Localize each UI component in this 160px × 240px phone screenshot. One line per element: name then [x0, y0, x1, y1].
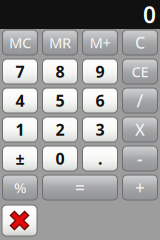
staticText: 0 [55, 148, 64, 169]
button[interactable]: 1 [2, 117, 37, 142]
button[interactable]: MR [42, 30, 77, 55]
button[interactable]: % [2, 175, 37, 200]
staticText: C [135, 32, 145, 53]
staticText: 1 [15, 119, 24, 140]
staticText: 6 [95, 90, 104, 111]
staticText: 7 [15, 61, 24, 82]
button[interactable]: + [122, 175, 157, 200]
button[interactable]: 8 [42, 59, 77, 84]
staticText: M+ [89, 33, 110, 52]
button[interactable]: CE [122, 59, 157, 84]
button[interactable]: - [122, 146, 157, 171]
button[interactable]: 2 [42, 117, 77, 142]
staticText: 5 [55, 90, 64, 111]
staticText: ± [15, 148, 24, 169]
staticText: 9 [95, 61, 104, 82]
staticText: MC [9, 33, 31, 52]
button[interactable]: 6 [82, 88, 117, 113]
button[interactable]: / [122, 88, 157, 113]
staticText: = [75, 176, 85, 199]
button[interactable]: 3 [82, 117, 117, 142]
button[interactable]: X [122, 117, 157, 142]
button[interactable]: 0 [42, 146, 77, 171]
button[interactable]: = [42, 175, 117, 200]
button[interactable]: M+ [82, 30, 117, 55]
button[interactable]: 7 [2, 59, 37, 84]
staticText: % [14, 178, 26, 197]
button[interactable]: Close [2, 205, 37, 236]
staticText: 8 [55, 61, 64, 82]
staticText: + [135, 176, 145, 199]
button[interactable]: 5 [42, 88, 77, 113]
button[interactable]: . [82, 146, 117, 171]
staticText: 3 [95, 119, 104, 140]
staticText: X [135, 119, 145, 140]
staticText: MR [49, 33, 71, 52]
button[interactable]: ± [2, 146, 37, 171]
staticText: 0 [143, 0, 156, 29]
button[interactable]: MC [2, 30, 37, 55]
staticText: . [98, 148, 102, 169]
staticText: / [136, 89, 143, 112]
button[interactable]: 9 [82, 59, 117, 84]
button[interactable]: 4 [2, 88, 37, 113]
staticText: - [137, 147, 143, 170]
button[interactable]: C [122, 30, 157, 55]
staticText: 2 [55, 119, 64, 140]
staticText: CE [131, 62, 148, 81]
staticText: 4 [15, 90, 24, 111]
